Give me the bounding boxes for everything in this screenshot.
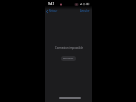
button[interactable]: Réessayer xyxy=(61,56,76,61)
button[interactable]: Back xyxy=(45,8,60,14)
button[interactable]: Annuler xyxy=(78,8,92,14)
staticText: Connexion impossible xyxy=(55,46,83,50)
other: Back xyxy=(46,10,48,13)
staticText: Retour xyxy=(49,9,58,13)
staticText: 9:41 xyxy=(48,2,55,6)
staticText: Réessayer xyxy=(63,57,74,60)
